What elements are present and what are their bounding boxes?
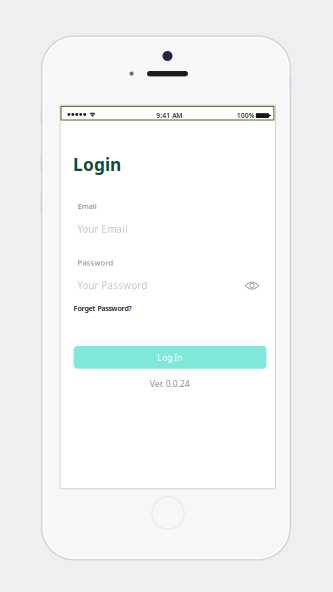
- staticText: Your Email: [77, 222, 128, 236]
- staticText: Forget Password?: [73, 303, 131, 313]
- button[interactable]: Forget Password?: [73, 303, 131, 313]
- button[interactable]: Log In: [74, 346, 266, 369]
- staticText: Log In: [157, 351, 183, 363]
- staticText: 9:41 AM: [156, 111, 182, 120]
- staticText: 100%: [237, 111, 255, 120]
- staticText: Your Password: [77, 278, 147, 292]
- staticText: Login: [73, 152, 121, 176]
- staticText: Email: [78, 201, 97, 211]
- staticText: Password: [77, 257, 113, 268]
- staticText: Ver. 0.0.24: [150, 378, 190, 390]
- button[interactable]: Show password: [245, 280, 259, 291]
